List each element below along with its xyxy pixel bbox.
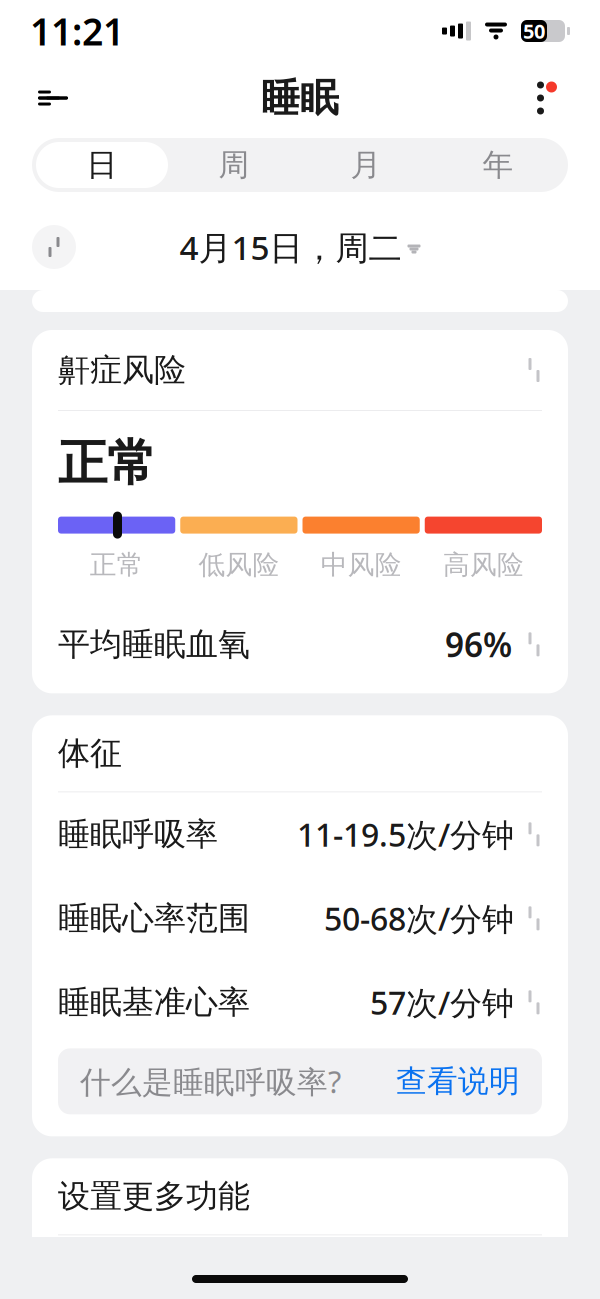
staticText: 鼾症风险: [58, 350, 186, 390]
staticText: 睡眠: [261, 74, 339, 122]
staticText: 正常: [90, 549, 144, 581]
button[interactable]: 更多选项: [520, 74, 574, 122]
button[interactable]: 返回: [26, 74, 80, 122]
staticText: 年: [482, 146, 513, 184]
staticText: 平均睡眠血氧: [58, 625, 250, 664]
staticText: 周: [218, 146, 249, 184]
button[interactable]: 平均睡眠血氧: [32, 607, 568, 681]
button[interactable]: 睡眠基准心率: [32, 960, 568, 1044]
button[interactable]: 鼾症风险: [32, 330, 568, 410]
staticText: 什么是睡眠呼吸率?: [80, 1061, 341, 1102]
staticText: 中风险: [321, 549, 402, 581]
staticText: 正常: [58, 433, 156, 494]
button[interactable]: 睡眠心率范围: [32, 876, 568, 960]
staticText: 睡眠基准心率: [58, 983, 250, 1022]
staticText: 96%: [445, 622, 512, 666]
staticText: 睡眠呼吸率: [58, 815, 218, 854]
button[interactable]: 月: [300, 142, 432, 188]
staticText: 查看说明: [396, 1062, 520, 1100]
button[interactable]: 睡眠呼吸率: [32, 792, 568, 876]
button[interactable]: 前一天: [28, 221, 80, 273]
staticText: 日: [86, 146, 117, 184]
staticText: 设置更多功能: [58, 1177, 250, 1216]
staticText: 11-19.5次/分钟: [297, 813, 514, 856]
staticText: 设置作息习惯: [114, 1261, 306, 1299]
staticText: 睡眠心率范围: [58, 899, 250, 938]
staticText: 50-68次/分钟: [324, 897, 514, 940]
staticText: 高风险: [443, 549, 524, 581]
staticText: 11:21: [30, 6, 124, 56]
staticText: 4月15日，周二: [179, 225, 401, 269]
staticText: 50: [523, 18, 545, 44]
staticText: 体征: [58, 734, 122, 773]
button[interactable]: 年: [432, 142, 564, 188]
staticText: 57次/分钟: [370, 981, 514, 1024]
staticText: 月: [350, 146, 381, 184]
button[interactable]: 日: [36, 142, 168, 188]
button[interactable]: 什么是睡眠呼吸率?: [58, 1048, 542, 1114]
staticText: 低风险: [198, 549, 279, 581]
button[interactable]: 周: [168, 142, 300, 188]
button[interactable]: 设置作息习惯: [32, 1235, 568, 1299]
